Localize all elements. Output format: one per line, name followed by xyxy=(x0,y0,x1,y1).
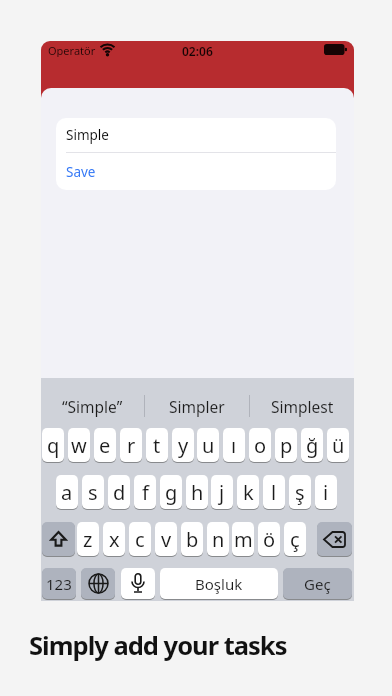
button[interactable]: f xyxy=(134,475,156,509)
staticText: o xyxy=(254,432,267,459)
button[interactable]: i xyxy=(315,475,337,509)
button[interactable]: u xyxy=(197,428,219,462)
button[interactable] xyxy=(42,522,75,556)
staticText: g xyxy=(165,479,178,506)
staticText: n xyxy=(212,526,225,553)
staticText: w xyxy=(71,432,87,459)
button[interactable]: v xyxy=(155,522,177,556)
staticText: u xyxy=(202,432,215,459)
staticText: r xyxy=(127,432,136,459)
button[interactable]: j xyxy=(211,475,233,509)
staticText: c xyxy=(135,526,145,553)
staticText: d xyxy=(113,479,126,506)
button[interactable]: Save xyxy=(56,153,336,190)
button[interactable]: n xyxy=(207,522,229,556)
staticText: Simple xyxy=(66,126,109,144)
button[interactable]: e xyxy=(94,428,116,462)
button[interactable]: Boşluk xyxy=(160,568,278,599)
staticText: m xyxy=(234,526,253,553)
staticText: y xyxy=(178,432,189,459)
staticText: s xyxy=(88,479,98,506)
button[interactable]: q xyxy=(42,428,64,462)
staticText: Save xyxy=(66,163,96,181)
staticText: Boşluk xyxy=(195,574,243,594)
staticText: ş xyxy=(295,479,305,506)
button[interactable]: ö xyxy=(258,522,280,556)
staticText: f xyxy=(142,479,149,506)
button[interactable]: ı xyxy=(223,428,245,462)
staticText: Geç xyxy=(304,574,331,594)
staticText: i xyxy=(323,479,329,506)
staticText: e xyxy=(99,432,111,459)
staticText: ğ xyxy=(306,432,319,459)
button[interactable]: ü xyxy=(327,428,349,462)
staticText: t xyxy=(153,432,161,459)
button[interactable]: p xyxy=(275,428,297,462)
button[interactable]: o xyxy=(249,428,271,462)
button[interactable]: l xyxy=(263,475,285,509)
staticText: Simplest xyxy=(271,396,334,417)
staticText: Simply add your tasks xyxy=(29,628,287,663)
staticText: “Simple” xyxy=(62,396,123,417)
staticText: k xyxy=(243,479,254,506)
button[interactable]: m xyxy=(232,522,254,556)
staticText: ü xyxy=(332,432,345,459)
button[interactable]: ş xyxy=(289,475,311,509)
staticText: p xyxy=(280,432,293,459)
button[interactable]: Geç xyxy=(283,568,352,599)
staticText: l xyxy=(271,479,277,506)
button[interactable]: k xyxy=(237,475,259,509)
button[interactable]: ğ xyxy=(301,428,323,462)
staticText: ö xyxy=(263,526,276,553)
staticText: Operatör xyxy=(48,43,96,57)
staticText: z xyxy=(83,526,93,553)
staticText: ı xyxy=(231,432,237,459)
staticText: v xyxy=(161,526,172,553)
staticText: q xyxy=(47,432,60,459)
staticText: 123 xyxy=(46,574,72,594)
staticText: a xyxy=(61,479,73,506)
button[interactable]: Simple xyxy=(56,118,336,152)
button[interactable]: “Simple” xyxy=(41,384,144,428)
button[interactable]: w xyxy=(68,428,90,462)
button[interactable]: b xyxy=(181,522,203,556)
staticText: b xyxy=(186,526,199,553)
button[interactable]: y xyxy=(172,428,194,462)
staticText: ç xyxy=(290,526,300,553)
staticText: h xyxy=(191,479,204,506)
button[interactable]: h xyxy=(186,475,208,509)
button[interactable]: z xyxy=(77,522,99,556)
button[interactable]: Simpler xyxy=(145,384,249,428)
staticText: 02:06 xyxy=(182,43,213,59)
button[interactable]: 123 xyxy=(42,568,76,599)
button[interactable]: s xyxy=(82,475,104,509)
button[interactable]: x xyxy=(103,522,125,556)
button[interactable]: r xyxy=(120,428,142,462)
button[interactable]: d xyxy=(108,475,130,509)
button[interactable]: Simplest xyxy=(250,384,354,428)
button[interactable]: t xyxy=(146,428,168,462)
button[interactable]: g xyxy=(160,475,182,509)
button[interactable]: ç xyxy=(284,522,306,556)
staticText: Simpler xyxy=(169,396,225,417)
staticText: j xyxy=(219,479,225,506)
button[interactable] xyxy=(81,568,115,599)
staticText: x xyxy=(109,526,120,553)
button[interactable]: a xyxy=(56,475,78,509)
button[interactable] xyxy=(317,522,352,556)
button[interactable]: c xyxy=(129,522,151,556)
button[interactable] xyxy=(121,568,155,599)
